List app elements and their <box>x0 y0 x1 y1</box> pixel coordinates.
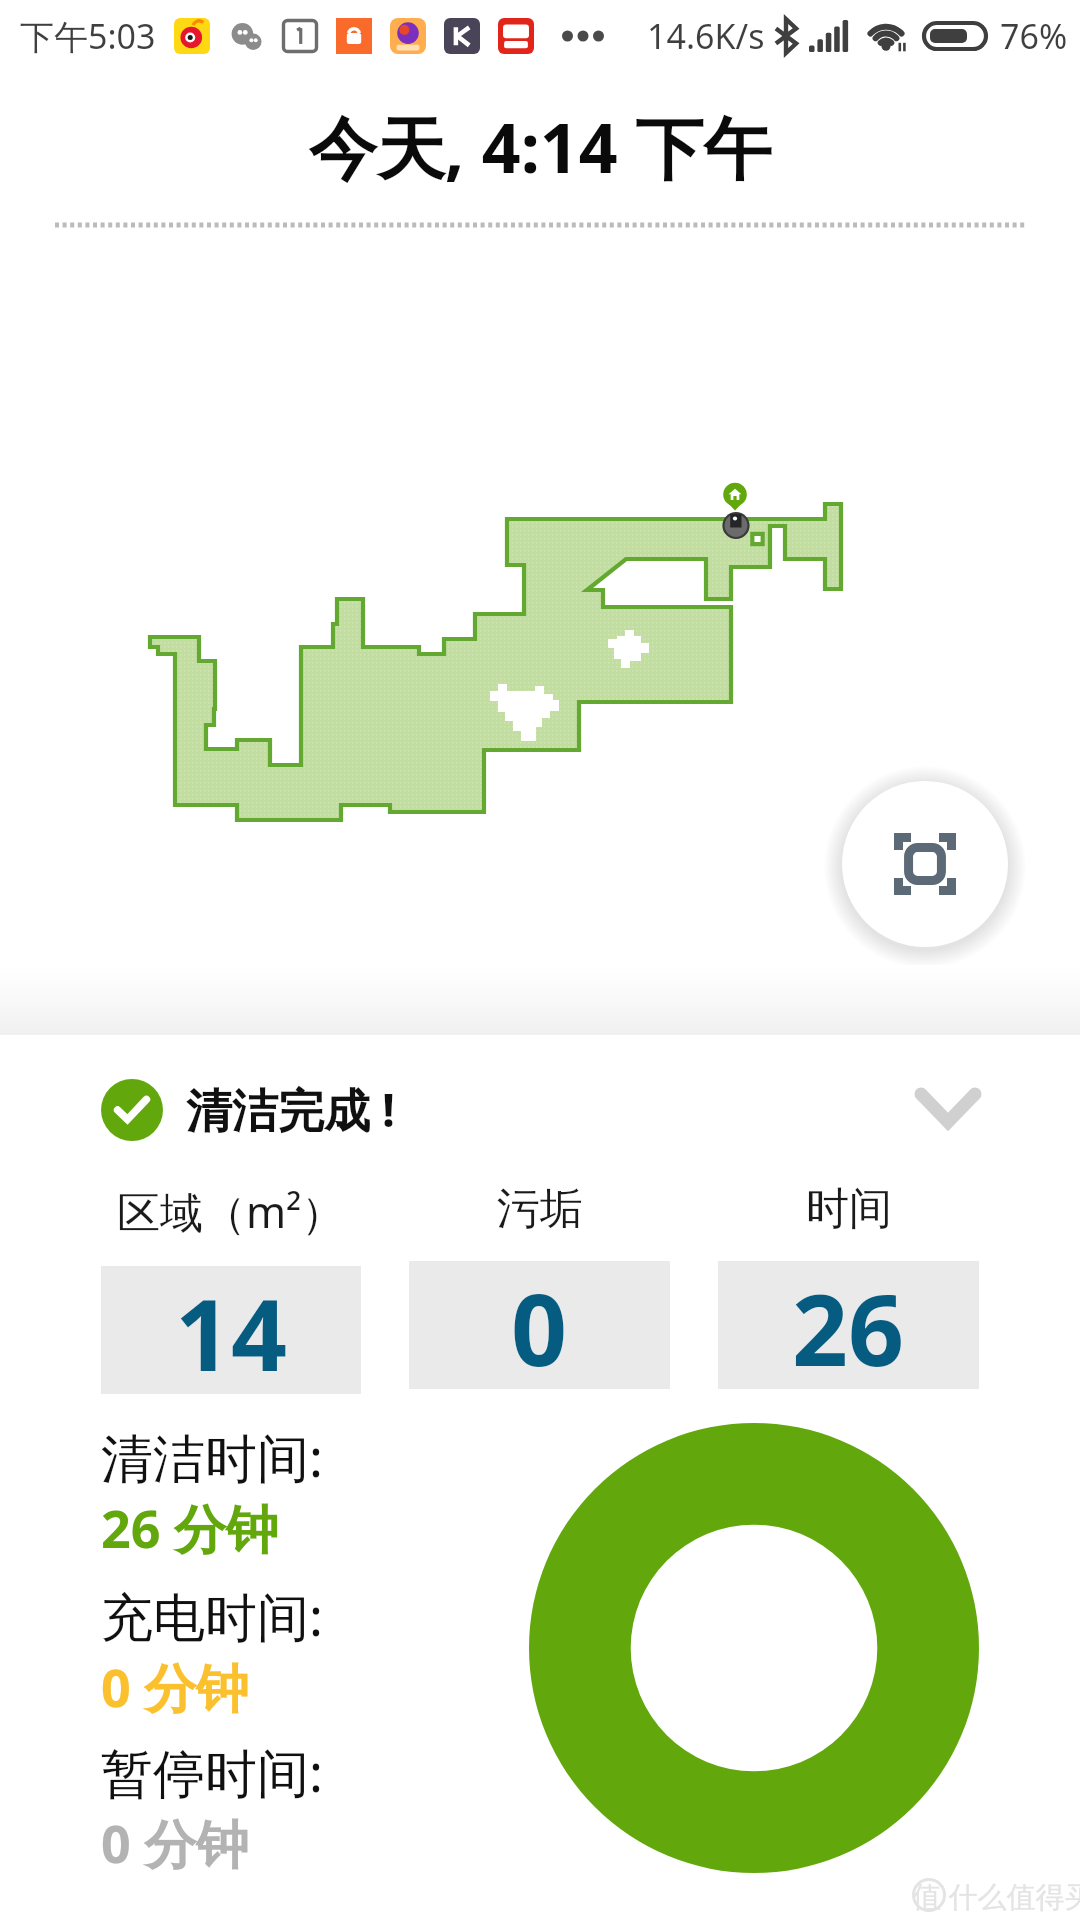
staticText: 值 什么值得买 <box>912 1876 1080 1916</box>
staticText: 14 <box>175 1266 288 1394</box>
staticText: 今天, 4:14 下午 <box>0 100 1080 193</box>
staticText: 0 分钟 <box>101 1651 249 1722</box>
staticText: 区域（m²） <box>117 1182 345 1241</box>
staticText: 暂停时间: <box>101 1736 323 1807</box>
staticText: 时间 <box>806 1182 892 1236</box>
staticText: 76% <box>1000 13 1068 59</box>
button[interactable]: Cleaning map <box>0 0 1080 1920</box>
staticText: 下午5:03 <box>20 13 156 59</box>
staticText: 26 <box>792 1261 905 1389</box>
staticText: 0 分钟 <box>101 1807 249 1878</box>
staticText: 清洁完成 ! <box>186 1078 395 1141</box>
button[interactable]: Collapse details <box>893 1058 1003 1158</box>
staticText: 14.6K/s <box>647 13 765 59</box>
staticText: 充电时间: <box>101 1580 323 1651</box>
staticText: 污垢 <box>497 1182 583 1236</box>
staticText: 0 <box>511 1261 568 1389</box>
button[interactable]: 清洁完成 ! <box>101 1072 541 1148</box>
staticText: 26 分钟 <box>101 1492 279 1563</box>
staticText: 清洁时间: <box>101 1421 323 1492</box>
button[interactable]: Fit map to screen <box>842 781 1008 947</box>
